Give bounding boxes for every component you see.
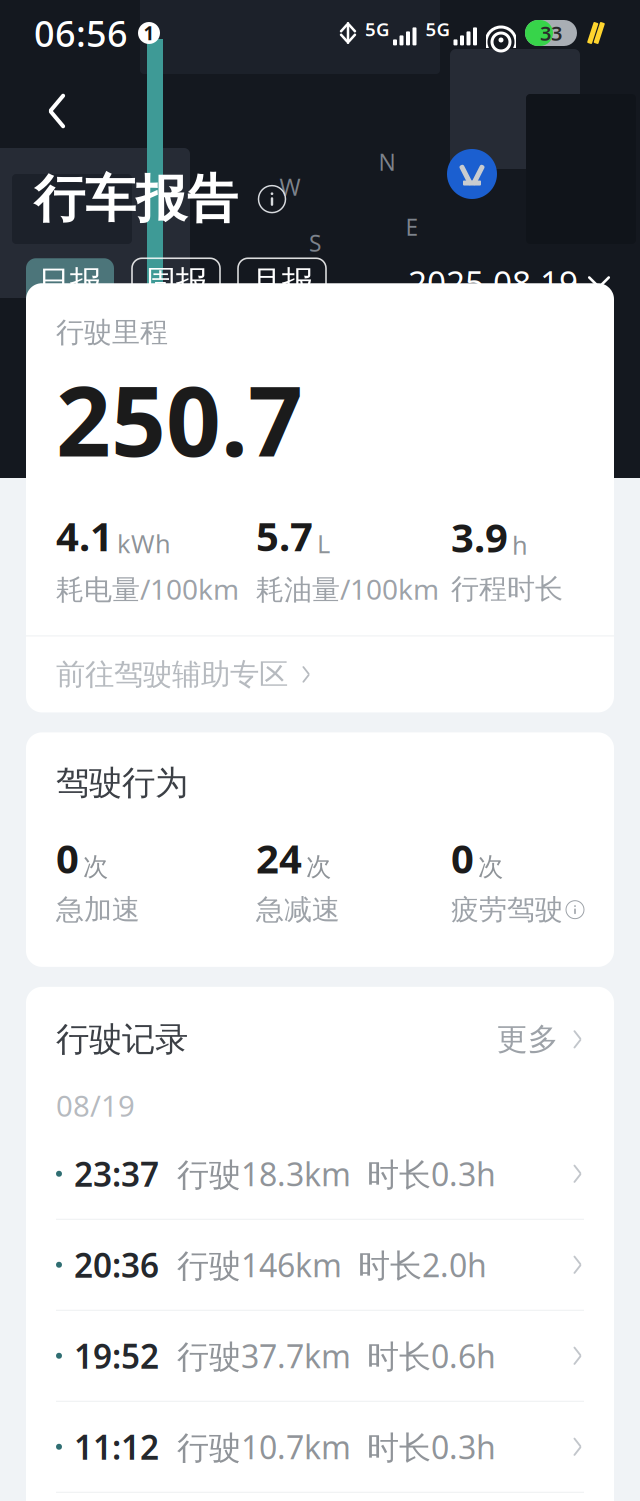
staticText: 33 (540, 20, 562, 46)
staticText: L (317, 527, 330, 560)
button[interactable]: 月报 (238, 258, 326, 306)
staticText: 2025.08.19 (408, 260, 578, 304)
staticText: 行驶37.7km 时长0.6h (177, 1334, 496, 1377)
staticText: 08/19 (56, 1086, 135, 1125)
staticText: 前往驾驶辅助专区 (56, 656, 288, 692)
staticText: 急加速 (56, 892, 140, 927)
staticText: 11:12 (74, 1425, 159, 1469)
staticText: 急减速 (256, 892, 340, 927)
staticText: kWh (117, 527, 171, 560)
staticText: 1 (143, 21, 154, 45)
staticText: 次 (306, 851, 331, 882)
staticText: 24 (256, 831, 302, 884)
staticText: 23:37 (74, 1152, 159, 1196)
staticText: h (512, 528, 528, 562)
button[interactable]: 更多 (497, 1020, 584, 1058)
button[interactable]: 周报 (132, 258, 220, 306)
button[interactable]: 日报 (26, 258, 114, 306)
staticText: 06:56 (34, 9, 128, 57)
staticText: N (378, 147, 395, 177)
button[interactable]: 19:52 (26, 1311, 614, 1401)
staticText: 次 (83, 851, 108, 882)
staticText: 20:36 (74, 1243, 159, 1287)
staticText: W (279, 172, 300, 202)
staticText: E (405, 212, 418, 242)
staticText: 疲劳驾驶 (451, 892, 563, 927)
staticText: 行驶18.3km 时长0.3h (177, 1152, 496, 1195)
staticText: 0 (56, 831, 79, 884)
staticText: 行驶里程 (56, 315, 168, 350)
staticText: 5.7 (256, 509, 313, 562)
staticText: 耗油量/100km (256, 570, 439, 607)
button[interactable]: 23:37 (26, 1129, 614, 1219)
staticText: 0 (451, 831, 474, 884)
staticText: 5G (365, 17, 390, 41)
staticText: 19:52 (74, 1334, 159, 1378)
staticText: 月报 (250, 263, 314, 302)
staticText: 更多 (497, 1020, 559, 1058)
staticText: 行程时长 (451, 572, 563, 606)
button[interactable]: 关于行车报告 (252, 179, 292, 219)
staticText: 行车报告 (34, 168, 238, 230)
staticText: 行驶10.7km 时长0.3h (177, 1425, 496, 1468)
staticText: 次 (478, 851, 503, 882)
button[interactable]: 2025.08.19 (408, 260, 610, 304)
staticText: 4.1 (56, 509, 113, 562)
staticText: 耗电量/100km (56, 570, 239, 607)
staticText: 行驶记录 (56, 1019, 188, 1060)
staticText: 行驶146km 时长2.0h (177, 1243, 487, 1286)
button[interactable]: Back (22, 80, 92, 142)
button[interactable]: 11:12 (26, 1402, 614, 1492)
staticText: 5G (425, 17, 450, 41)
button[interactable]: 前往驾驶辅助专区 (26, 636, 614, 712)
staticText: 日报 (38, 263, 102, 302)
staticText: 驾驶行为 (56, 762, 188, 803)
staticText: S (309, 228, 321, 258)
staticText: 250.7 (56, 356, 303, 483)
staticText: 3.9 (451, 510, 508, 564)
staticText: 周报 (144, 263, 208, 302)
button[interactable]: 20:36 (26, 1220, 614, 1310)
